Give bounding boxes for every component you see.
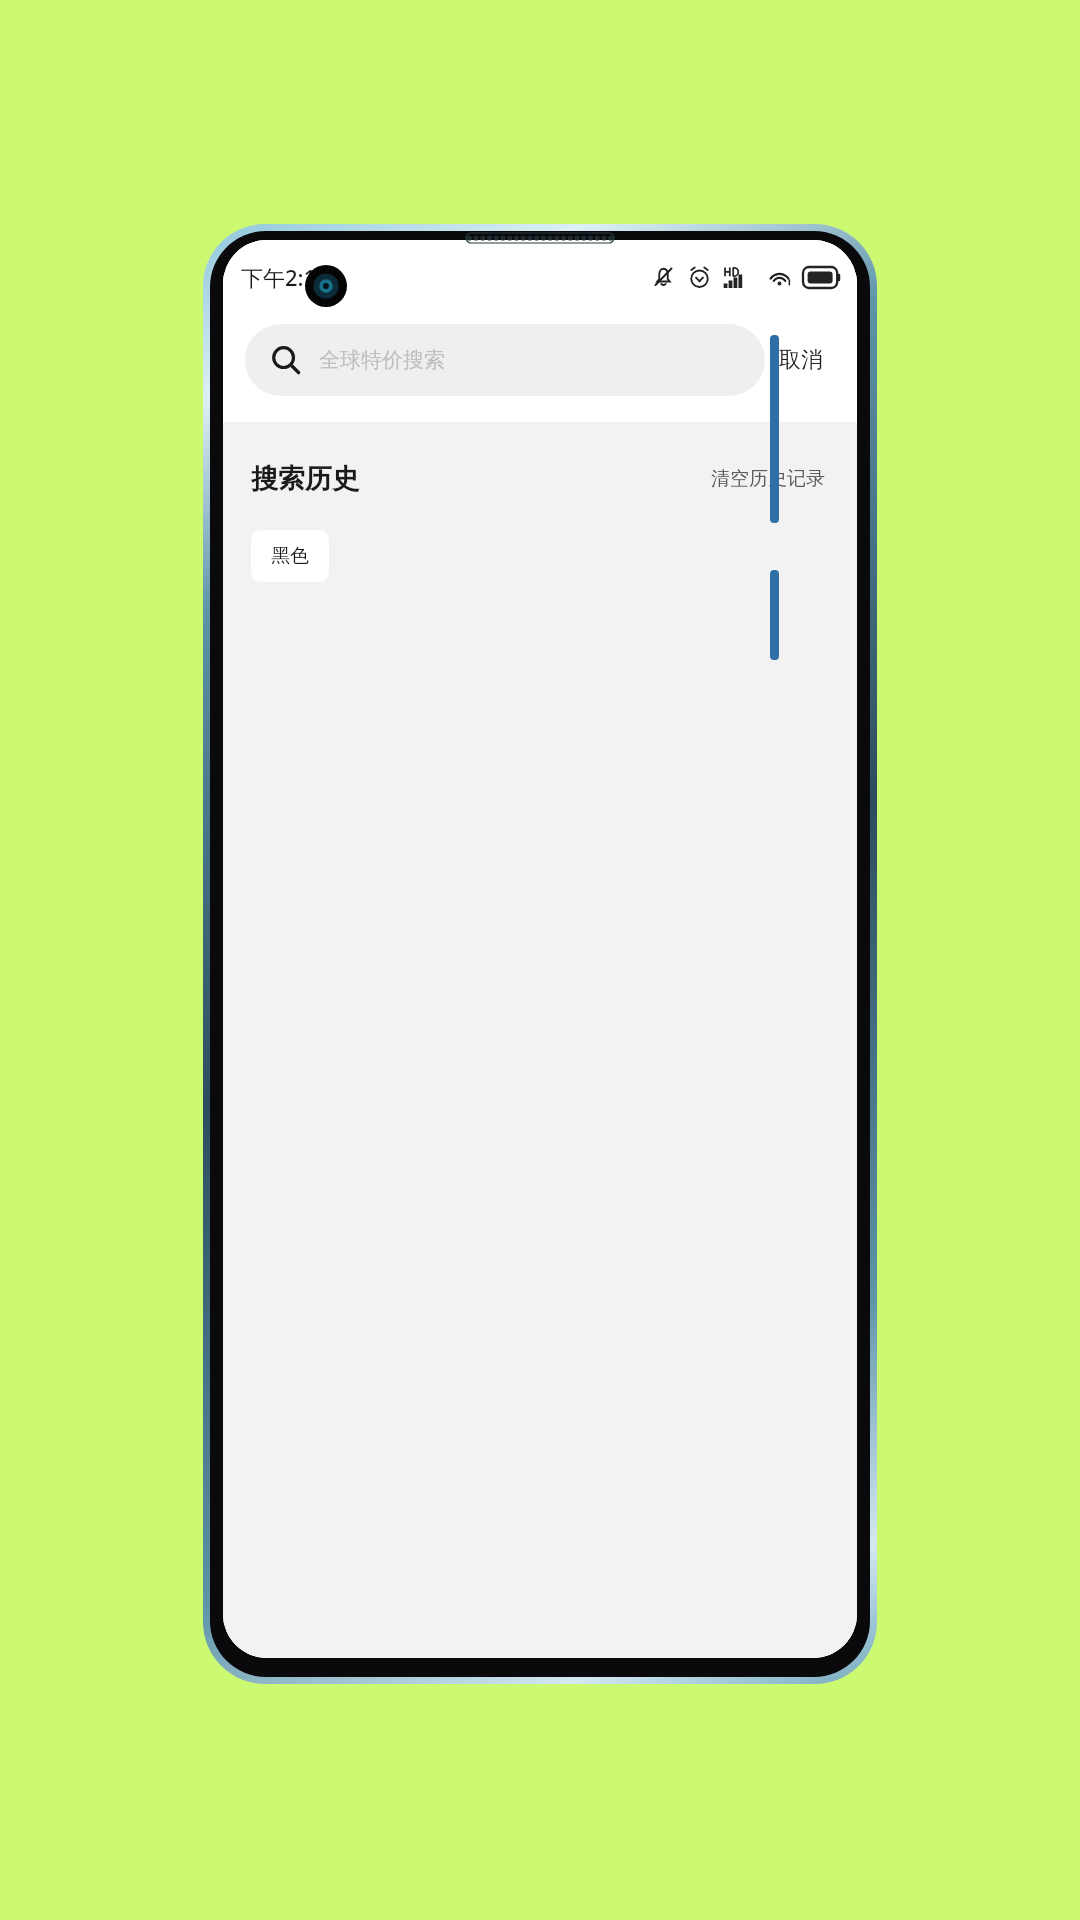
button[interactable]: 清空历史记录 [707, 463, 829, 495]
button[interactable]: 全球特价搜索 [245, 324, 765, 396]
staticText: 黑色 [271, 544, 309, 568]
staticText: 搜索历史 [251, 462, 359, 496]
staticText: 取消 [779, 346, 823, 374]
staticText: 清空历史记录 [711, 467, 825, 491]
button[interactable]: 黑色 [251, 530, 329, 582]
staticText: 全球特价搜索 [319, 347, 445, 373]
staticText: 下午2:15 [241, 262, 329, 292]
button[interactable]: 取消 [765, 336, 837, 384]
